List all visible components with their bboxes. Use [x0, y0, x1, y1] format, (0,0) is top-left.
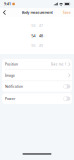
button[interactable]: Power: [2, 93, 72, 104]
staticText: Notification: [5, 84, 23, 89]
button[interactable]: Image: [2, 70, 72, 81]
staticText: 55: [31, 43, 35, 48]
staticText: Save: [63, 10, 71, 15]
staticText: 48: [39, 33, 43, 38]
button[interactable]: Back: [0, 8, 10, 17]
staticText: 54: [31, 33, 35, 38]
staticText: Position: [5, 62, 18, 67]
button[interactable]: Save: [59, 8, 74, 17]
staticText: 49: [39, 43, 43, 48]
button[interactable]: Notification: [2, 81, 72, 92]
staticText: 53: [31, 23, 35, 28]
staticText: Take me 1: [51, 62, 67, 66]
staticText: Power: [5, 96, 15, 101]
staticText: 9:41: [4, 2, 11, 6]
staticText: 47: [39, 23, 43, 28]
button[interactable]: Position: [2, 59, 72, 70]
staticText: Body measurement: [21, 10, 52, 15]
staticText: Image: [5, 73, 15, 78]
